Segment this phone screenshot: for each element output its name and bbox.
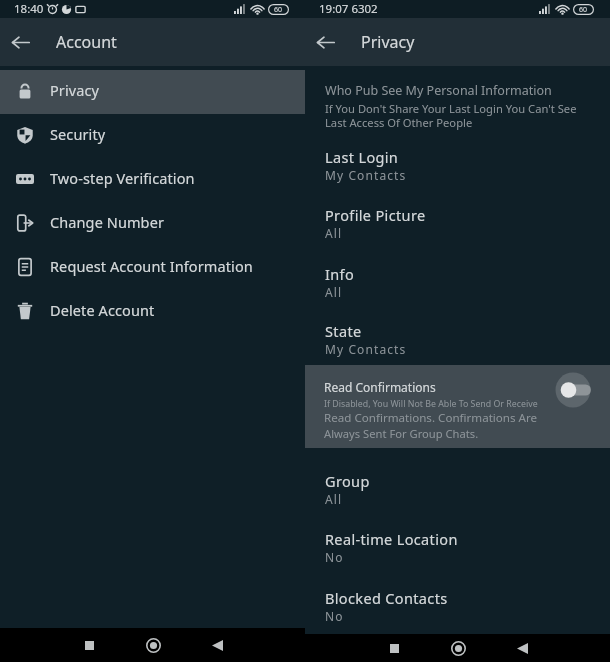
staticText: Real-time Location [325,529,458,549]
button[interactable]: Recents [57,628,121,662]
staticText: Read Confirmations. Confirmations Are [324,410,538,426]
staticText: Last Login [325,147,399,167]
staticText: Account [56,31,117,53]
button[interactable]: Change Number [0,202,305,246]
staticText: 60 [274,5,283,15]
button[interactable]: Read confirmations toggle [556,373,590,407]
button[interactable]: Read Confirmations [305,365,610,448]
button[interactable]: Privacy [0,70,305,114]
staticText: Change Number [50,212,165,232]
staticText: Read Confirmations [324,379,436,395]
staticText: All [325,225,343,241]
button[interactable]: Back [185,628,249,662]
staticText: Two-step Verification [50,168,195,188]
staticText: Group [325,471,370,491]
staticText: Delete Account [50,300,155,320]
staticText: If You Don't Share Your Last Login You C… [325,101,577,130]
staticText: Profile Picture [325,205,426,225]
button[interactable]: State [305,310,610,365]
button[interactable]: Two-step Verification [0,158,305,202]
button[interactable]: Back [490,634,554,662]
button[interactable]: Last Login [305,137,610,193]
button[interactable]: Group [305,448,610,517]
staticText: 19:07 6302 [319,1,378,17]
button[interactable]: Profile Picture [305,193,610,251]
staticText: Always Sent For Group Chats. [324,426,479,441]
button[interactable]: Back [305,22,345,62]
staticText: Request Account Information [50,256,253,276]
staticText: Info [325,264,355,284]
staticText: All [325,491,343,507]
staticText: Privacy [361,31,415,53]
button[interactable]: Security [0,114,305,158]
button[interactable]: Real-time Location [305,517,610,575]
button[interactable]: Recents [362,634,426,662]
staticText: Security [50,124,106,144]
staticText: If Disabled, You Will Not Be Able To Sen… [324,398,538,410]
staticText: Who Pub See My Personal Information [325,82,552,99]
staticText: 18:40 [14,1,44,17]
staticText: All [325,284,343,300]
button[interactable]: Request Account Information [0,246,305,290]
button[interactable]: Blocked Contacts [305,575,610,634]
staticText: No [325,549,344,565]
button[interactable]: Home [426,634,490,662]
staticText: Privacy [50,80,100,100]
button[interactable]: Back [0,22,40,62]
staticText: State [325,321,362,341]
button[interactable]: Info [305,251,610,310]
button[interactable]: Delete Account [0,290,305,334]
staticText: My Contacts [325,167,407,183]
staticText: Blocked Contacts [325,588,448,608]
staticText: My Contacts [325,341,407,357]
staticText: No [325,608,344,624]
button[interactable]: Home [121,628,185,662]
staticText: 60 [579,5,588,15]
